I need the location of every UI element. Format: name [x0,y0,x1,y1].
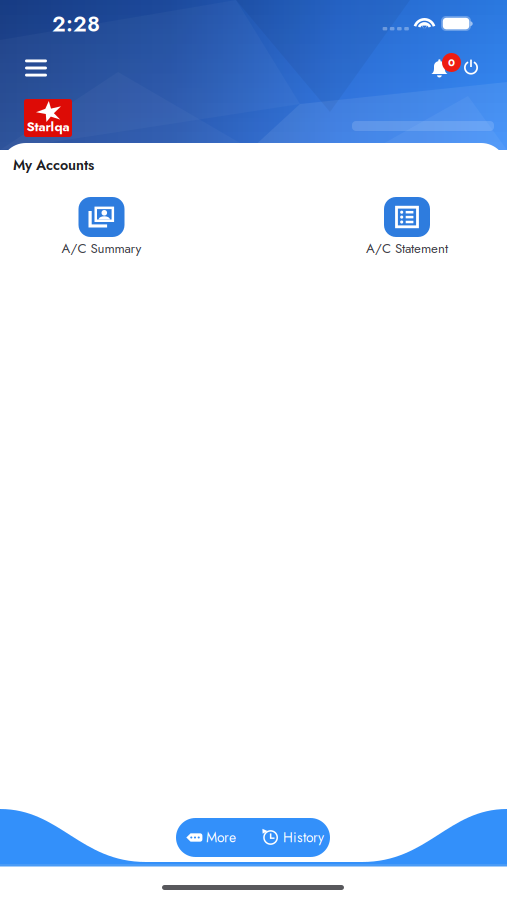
staticText: A/C Statement [366,239,448,258]
staticText: 0 [448,55,455,70]
button[interactable]: A/C Statement [326,197,487,267]
button[interactable]: History [262,818,329,857]
staticText: My Accounts [13,155,94,175]
staticText: A/C Summary [61,239,141,258]
staticText: Starlqa [26,117,69,136]
staticText: 2:28 [52,8,100,40]
button[interactable]: More [176,818,242,857]
button[interactable]: Notifications [430,53,464,85]
button[interactable]: Log out [463,59,479,75]
button[interactable]: Menu [14,48,58,88]
button[interactable]: A/C Summary [21,197,182,267]
staticText: More [206,828,236,847]
staticText: History [283,828,324,847]
